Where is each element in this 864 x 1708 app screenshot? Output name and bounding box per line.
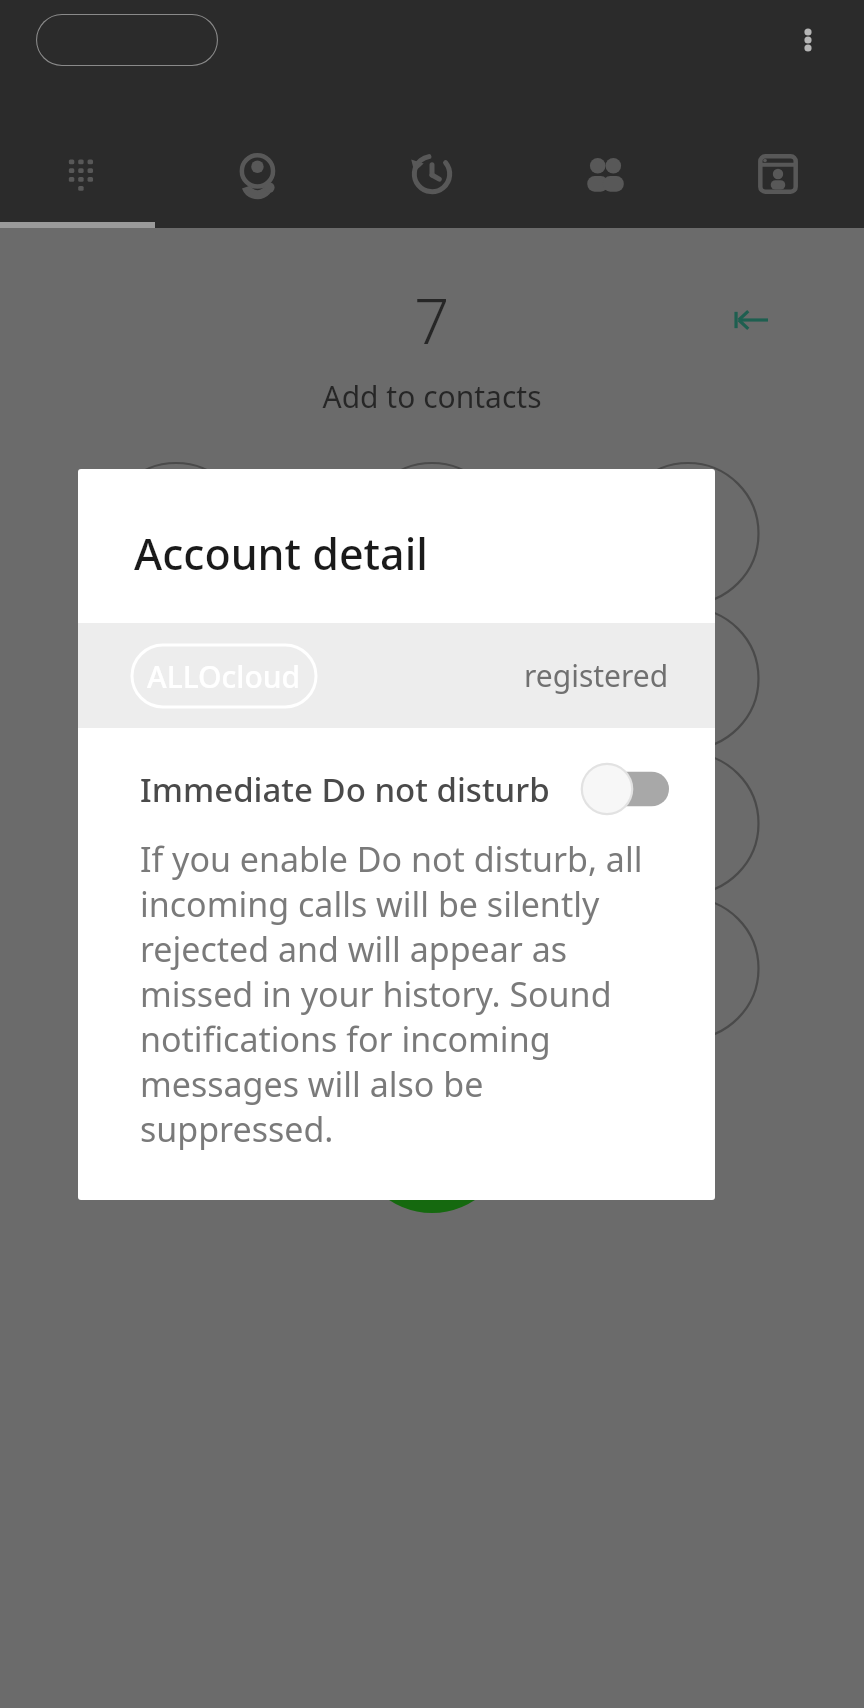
button[interactable]: Contacts (518, 120, 691, 228)
button[interactable]: 5 (352, 606, 512, 751)
button[interactable]: ALLOcloud (78, 623, 715, 728)
button[interactable]: Add to contacts (0, 376, 864, 417)
button[interactable]: Keypad (0, 120, 172, 228)
button[interactable]: Search (36, 14, 218, 66)
button[interactable]: More options (778, 10, 838, 70)
button[interactable]: 9 (608, 751, 768, 896)
button[interactable]: 1 (96, 461, 256, 606)
button[interactable]: 8 (352, 751, 512, 896)
staticText: If you enable Do not disturb, all incomi… (140, 836, 671, 1152)
button[interactable]: Immediate Do not disturb toggle (579, 761, 669, 817)
button[interactable]: Recents (345, 120, 518, 228)
staticText: * (162, 935, 190, 1003)
staticText: 0 (418, 917, 447, 985)
staticText: 1 (162, 500, 191, 568)
staticText: PQRS (150, 844, 202, 871)
staticText: registered (524, 655, 669, 696)
staticText: Immediate Do not disturb (140, 767, 550, 812)
button[interactable]: Voicemail (172, 120, 345, 228)
button[interactable]: # (608, 896, 768, 1041)
button[interactable]: 2 (352, 461, 512, 606)
button[interactable]: 6 (608, 606, 768, 751)
button[interactable]: 0 (352, 896, 512, 1041)
staticText: ALLOcloud (147, 656, 301, 697)
staticText: 2 (418, 486, 447, 554)
button[interactable]: Call (354, 1057, 510, 1213)
staticText: 7 (414, 278, 450, 362)
staticText: GHI (158, 699, 195, 726)
staticText: 8 (418, 776, 447, 844)
staticText: 7 (162, 776, 191, 844)
staticText: 4 (162, 631, 191, 699)
button[interactable]: Directory (691, 120, 864, 228)
button[interactable]: * (96, 896, 256, 1041)
button[interactable]: Backspace (724, 293, 778, 347)
staticText: + (425, 985, 440, 1020)
staticText: Account detail (134, 524, 428, 583)
button[interactable]: 4 (96, 606, 256, 751)
staticText: ABC (413, 554, 452, 581)
button[interactable]: 3 (608, 461, 768, 606)
button[interactable]: 7 (96, 751, 256, 896)
staticText: TUV (413, 844, 451, 871)
